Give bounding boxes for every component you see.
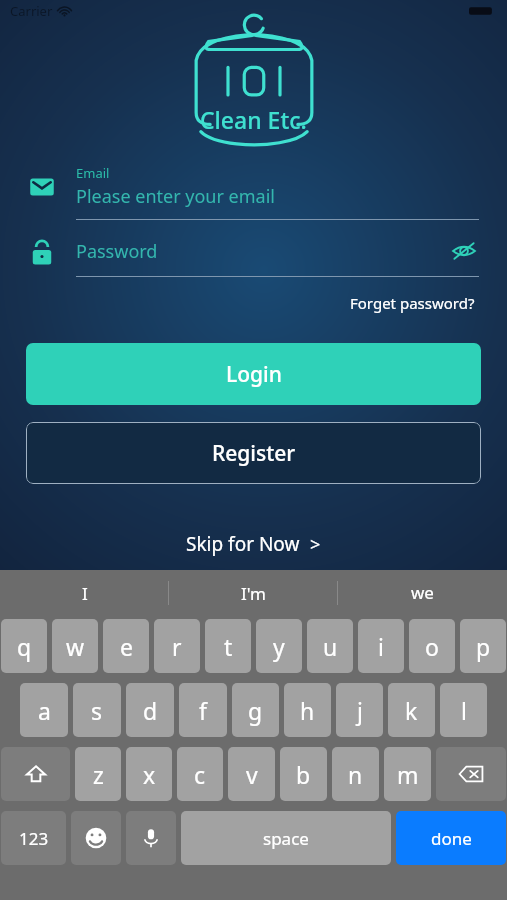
staticText: b	[296, 759, 311, 790]
staticText: 123	[19, 827, 49, 850]
button[interactable]: p	[460, 619, 506, 673]
staticText: g	[248, 695, 263, 726]
button[interactable]: n	[332, 747, 379, 801]
button[interactable]: q	[1, 619, 47, 673]
button[interactable]: w	[52, 619, 98, 673]
button[interactable]: o	[409, 619, 455, 673]
staticText: Login	[226, 360, 282, 389]
button[interactable]: l	[440, 683, 487, 737]
staticText: w	[66, 631, 85, 662]
button[interactable]: m	[384, 747, 431, 801]
staticText: i	[378, 631, 384, 662]
staticText: Carrier	[10, 2, 53, 20]
button[interactable]: Skip for Now	[176, 527, 331, 561]
staticText: Clean Etc.	[200, 104, 307, 135]
staticText: f	[199, 695, 207, 726]
button[interactable]: done	[396, 811, 506, 865]
staticText: >	[310, 532, 321, 557]
staticText: m	[397, 759, 419, 790]
button[interactable]: r	[154, 619, 200, 673]
staticText: t	[224, 631, 233, 662]
staticText: y	[273, 631, 285, 662]
button[interactable]: b	[280, 747, 327, 801]
button[interactable]: a	[20, 683, 68, 737]
button[interactable]: we	[338, 581, 507, 604]
staticText: Register	[212, 439, 296, 468]
button[interactable]: z	[75, 747, 121, 801]
button[interactable]: Shift	[1, 747, 70, 801]
button[interactable]: I	[0, 581, 169, 605]
button[interactable]: j	[336, 683, 383, 737]
staticText: d	[143, 695, 158, 726]
button[interactable]: 123	[1, 811, 66, 865]
staticText: a	[38, 695, 51, 726]
button[interactable]: Dictation	[126, 811, 176, 865]
staticText: u	[323, 631, 338, 662]
button[interactable]: Register	[26, 422, 481, 484]
staticText: h	[300, 695, 315, 726]
staticText: l	[461, 695, 467, 726]
button[interactable]: e	[103, 619, 149, 673]
staticText: v	[246, 759, 258, 790]
staticText: z	[93, 759, 104, 790]
button[interactable]: h	[284, 683, 331, 737]
button[interactable]: Login	[26, 343, 481, 405]
staticText: o	[425, 631, 439, 662]
staticText: e	[120, 631, 133, 662]
staticText: q	[17, 631, 32, 662]
staticText: k	[405, 695, 418, 726]
button[interactable]: Forget password?	[346, 289, 479, 317]
button[interactable]: c	[177, 747, 223, 801]
button[interactable]: t	[205, 619, 251, 673]
button[interactable]: Show password	[449, 236, 479, 266]
button[interactable]: v	[228, 747, 275, 801]
staticText: I	[82, 582, 88, 605]
button[interactable]: space	[181, 811, 391, 865]
staticText: r	[172, 631, 182, 662]
staticText: we	[411, 581, 434, 604]
staticText: Please enter your email	[76, 184, 275, 209]
button[interactable]: g	[232, 683, 279, 737]
button[interactable]: i	[358, 619, 404, 673]
button[interactable]: d	[126, 683, 174, 737]
staticText: x	[143, 759, 156, 790]
staticText: Password	[76, 239, 449, 264]
button[interactable]: Emoji	[71, 811, 121, 865]
staticText: space	[263, 827, 309, 850]
button[interactable]: s	[73, 683, 121, 737]
staticText: I'm	[241, 582, 266, 605]
button[interactable]: x	[126, 747, 172, 801]
staticText: c	[194, 759, 206, 790]
staticText: Forget password?	[350, 293, 475, 313]
button[interactable]: u	[307, 619, 353, 673]
button[interactable]: Backspace	[436, 747, 506, 801]
button[interactable]: f	[179, 683, 227, 737]
staticText: n	[348, 759, 363, 790]
button[interactable]: I'm	[169, 581, 338, 605]
button[interactable]: k	[388, 683, 435, 737]
staticText: Email	[76, 164, 110, 182]
button[interactable]: y	[256, 619, 302, 673]
staticText: p	[476, 631, 491, 662]
staticText: done	[431, 827, 472, 850]
staticText: s	[91, 695, 103, 726]
staticText: j	[357, 695, 363, 726]
staticText: Skip for Now	[186, 531, 300, 557]
